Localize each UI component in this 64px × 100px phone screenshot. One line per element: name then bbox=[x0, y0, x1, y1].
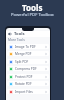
staticText: Image To PDF bbox=[15, 45, 36, 49]
button[interactable]: Rotate PDF bbox=[7, 81, 49, 86]
button[interactable]: Merge PDF bbox=[7, 51, 49, 56]
staticText: Rotate PDF bbox=[15, 82, 32, 86]
staticText: Powerful PDF Toolbox bbox=[11, 12, 54, 18]
staticText: Split PDF bbox=[15, 60, 29, 64]
staticText: Protect PDF bbox=[15, 75, 33, 79]
staticText: Import Files bbox=[15, 90, 33, 94]
button[interactable]: Split PDF bbox=[7, 59, 49, 64]
button[interactable]: Image To PDF bbox=[7, 44, 49, 49]
staticText: Compress PDF bbox=[15, 67, 37, 71]
staticText: More Tools bbox=[8, 38, 25, 42]
staticText: Tools bbox=[22, 2, 43, 13]
button[interactable]: Compress PDF bbox=[7, 66, 49, 71]
staticText: Tools bbox=[14, 31, 25, 37]
button[interactable]: Back bbox=[8, 32, 12, 36]
button[interactable]: Import Files bbox=[7, 89, 49, 94]
staticText: Merge PDF bbox=[15, 52, 32, 56]
button[interactable]: Protect PDF bbox=[7, 74, 49, 79]
